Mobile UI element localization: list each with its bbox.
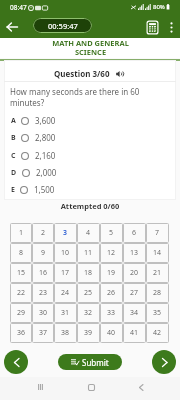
- button[interactable]: D: [0, 164, 180, 181]
- button[interactable]: 26: [100, 283, 123, 303]
- staticText: Question 3/60: [54, 68, 110, 79]
- staticText: 00:59:47: [48, 21, 78, 31]
- staticText: 32: [84, 308, 93, 318]
- button[interactable]: 5: [100, 223, 123, 243]
- button[interactable]: Previous question: [4, 350, 28, 374]
- staticText: 13: [130, 248, 139, 258]
- staticText: 1,500: [34, 184, 55, 195]
- button[interactable]: 24: [54, 283, 77, 303]
- button[interactable]: 12: [100, 243, 123, 263]
- button[interactable]: 9: [32, 243, 54, 263]
- button[interactable]: 29: [10, 303, 32, 323]
- staticText: 22: [17, 288, 26, 298]
- staticText: 24: [61, 288, 70, 298]
- staticText: 27: [130, 288, 139, 298]
- staticText: 39: [84, 328, 93, 338]
- staticText: 6: [132, 228, 137, 238]
- button[interactable]: 38: [54, 323, 77, 343]
- button[interactable]: 31: [54, 303, 77, 323]
- staticText: 9: [41, 248, 46, 258]
- staticText: 2: [41, 228, 46, 238]
- button[interactable]: 30: [32, 303, 54, 323]
- button[interactable]: Back: [133, 379, 149, 395]
- button[interactable]: 13: [123, 243, 146, 263]
- staticText: 26: [107, 288, 116, 298]
- button[interactable]: Submit: [58, 354, 122, 370]
- button[interactable]: Back: [2, 17, 22, 37]
- button[interactable]: A: [0, 112, 180, 129]
- button[interactable]: 16: [32, 263, 54, 283]
- button[interactable]: 35: [146, 303, 169, 323]
- button[interactable]: 6: [123, 223, 146, 243]
- button[interactable]: More options: [163, 19, 179, 35]
- staticText: How many seconds are there in 60 minutes…: [10, 86, 172, 108]
- button[interactable]: Home: [83, 379, 99, 395]
- staticText: E: [11, 185, 15, 195]
- staticText: 15: [17, 268, 26, 278]
- button[interactable]: 1: [10, 223, 32, 243]
- staticText: 41: [130, 328, 139, 338]
- staticText: Submit: [82, 357, 109, 368]
- button[interactable]: 23: [32, 283, 54, 303]
- button[interactable]: 11: [77, 243, 100, 263]
- staticText: 11: [84, 248, 93, 258]
- staticText: 1: [19, 228, 24, 238]
- button[interactable]: 27: [123, 283, 146, 303]
- staticText: 30: [39, 308, 48, 318]
- staticText: 16: [39, 268, 48, 278]
- staticText: 29: [17, 308, 26, 318]
- button[interactable]: 37: [32, 323, 54, 343]
- button[interactable]: Read question aloud: [114, 68, 126, 80]
- button[interactable]: 32: [77, 303, 100, 323]
- button[interactable]: 40: [100, 323, 123, 343]
- button[interactable]: 22: [10, 283, 32, 303]
- button[interactable]: 10: [54, 243, 77, 263]
- staticText: B: [11, 133, 16, 143]
- button[interactable]: Calculator: [142, 17, 162, 37]
- button[interactable]: 28: [146, 283, 169, 303]
- staticText: 2,160: [35, 150, 56, 161]
- button[interactable]: 17: [54, 263, 77, 283]
- button[interactable]: C: [0, 147, 180, 164]
- staticText: 2,800: [35, 132, 56, 143]
- staticText: D: [11, 168, 17, 178]
- button[interactable]: 33: [100, 303, 123, 323]
- button[interactable]: 2: [32, 223, 54, 243]
- staticText: 23: [39, 288, 48, 298]
- button[interactable]: Next question: [152, 350, 176, 374]
- staticText: 2,000: [36, 167, 57, 178]
- button[interactable]: 39: [77, 323, 100, 343]
- button[interactable]: 20: [123, 263, 146, 283]
- staticText: 08:47: [10, 3, 27, 12]
- button[interactable]: 19: [100, 263, 123, 283]
- button[interactable]: 14: [146, 243, 169, 263]
- button[interactable]: 34: [123, 303, 146, 323]
- staticText: 10: [61, 248, 70, 258]
- button[interactable]: 36: [10, 323, 32, 343]
- staticText: A: [11, 116, 16, 126]
- button[interactable]: 21: [146, 263, 169, 283]
- staticText: 14: [153, 248, 162, 258]
- button[interactable]: 7: [146, 223, 169, 243]
- staticText: 35: [153, 308, 162, 318]
- button[interactable]: 25: [77, 283, 100, 303]
- button[interactable]: 3: [54, 223, 77, 243]
- button[interactable]: 00:59:47: [33, 18, 92, 33]
- button[interactable]: 18: [77, 263, 100, 283]
- button[interactable]: Recent apps: [32, 379, 48, 395]
- button[interactable]: 41: [123, 323, 146, 343]
- staticText: 33: [107, 308, 116, 318]
- staticText: 3,600: [35, 115, 56, 126]
- staticText: 4: [86, 228, 91, 238]
- staticText: C: [11, 151, 16, 161]
- staticText: 12: [107, 248, 116, 258]
- button[interactable]: 4: [77, 223, 100, 243]
- staticText: 17: [61, 268, 70, 278]
- button[interactable]: 42: [146, 323, 169, 343]
- button[interactable]: E: [0, 181, 180, 198]
- button[interactable]: 15: [10, 263, 32, 283]
- staticText: 19: [107, 268, 116, 278]
- staticText: 25: [84, 288, 93, 298]
- button[interactable]: B: [0, 129, 180, 146]
- button[interactable]: 8: [10, 243, 32, 263]
